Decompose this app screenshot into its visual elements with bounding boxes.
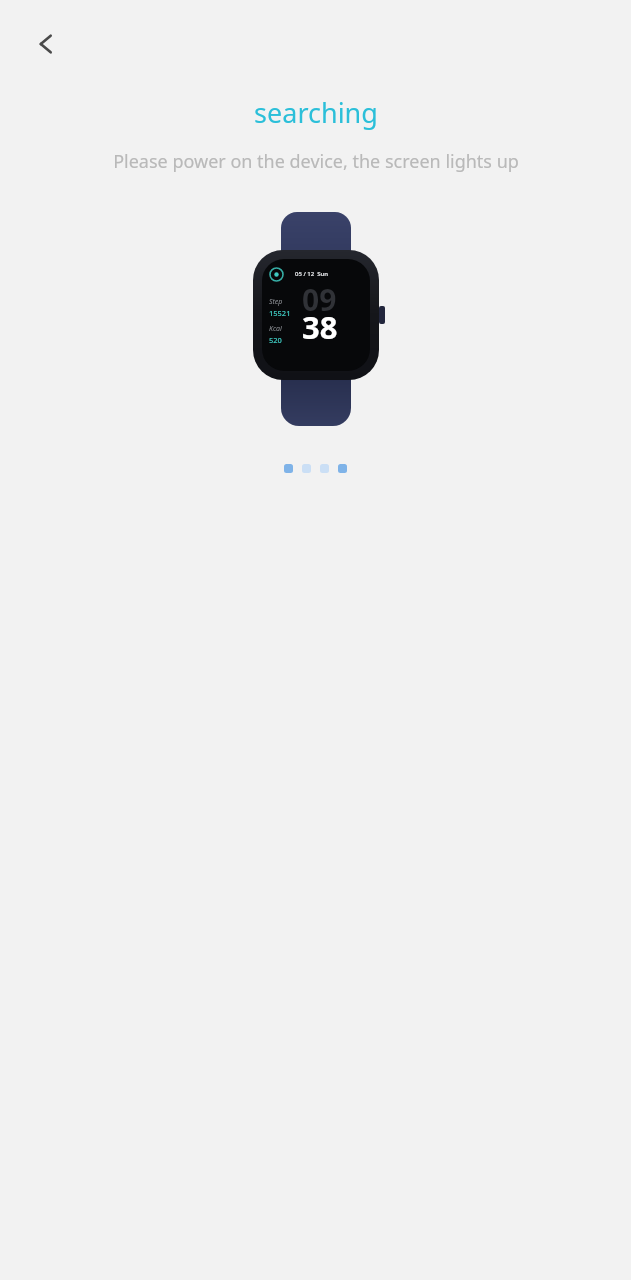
staticText: 38 [302,306,338,348]
staticText: 15521 [269,308,291,318]
staticText: Step [269,297,283,307]
staticText: 05 / 12 Sun [295,270,329,278]
button[interactable] [320,464,329,473]
staticText: Kcal [269,324,282,334]
staticText: searching [254,94,378,131]
staticText: Please power on the device, the screen l… [113,149,519,174]
staticText: 09 [302,279,337,320]
button[interactable] [338,464,347,473]
button[interactable] [284,464,293,473]
staticText: 520 [269,335,282,345]
button[interactable] [302,464,311,473]
button[interactable]: Back [20,18,72,70]
